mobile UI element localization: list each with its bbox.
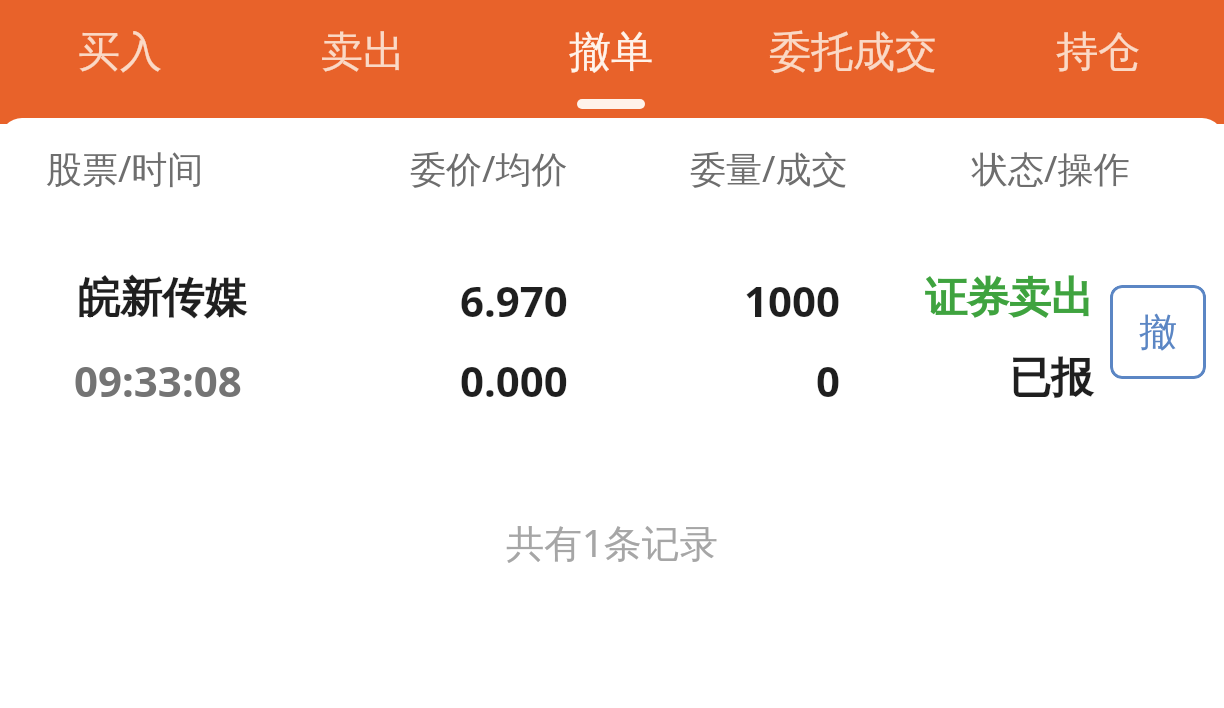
staticText: 委价/均价 (410, 144, 568, 193)
staticText: 撤 (1139, 308, 1177, 356)
staticText: 0 (640, 352, 840, 409)
button[interactable]: 持仓 (1040, 0, 1156, 124)
staticText: 证券卖出 (860, 272, 1093, 325)
staticText: 委量/成交 (690, 144, 848, 193)
button[interactable]: 买入 (62, 0, 178, 124)
button[interactable]: 撤 (1110, 285, 1206, 379)
staticText: 皖新传媒 (78, 272, 246, 325)
staticText: 持仓 (1056, 26, 1140, 79)
button[interactable]: 委托成交 (750, 0, 956, 124)
staticText: 0.000 (460, 352, 568, 409)
staticText: 6.970 (460, 272, 568, 329)
staticText: 股票/时间 (46, 144, 204, 193)
staticText: 共有1条记录 (506, 516, 718, 568)
staticText: 委托成交 (769, 26, 937, 79)
button[interactable]: 皖新传媒 (0, 258, 1224, 418)
staticText: 状态/操作 (972, 144, 1130, 193)
button[interactable]: 撤单 (553, 0, 669, 124)
button[interactable]: 卖出 (305, 0, 421, 124)
staticText: 1000 (640, 272, 840, 329)
staticText: 已报 (860, 352, 1093, 405)
staticText: 09:33:08 (74, 352, 242, 409)
staticText: 卖出 (321, 26, 405, 79)
staticText: 买入 (78, 26, 162, 79)
staticText: 撤单 (569, 26, 653, 79)
